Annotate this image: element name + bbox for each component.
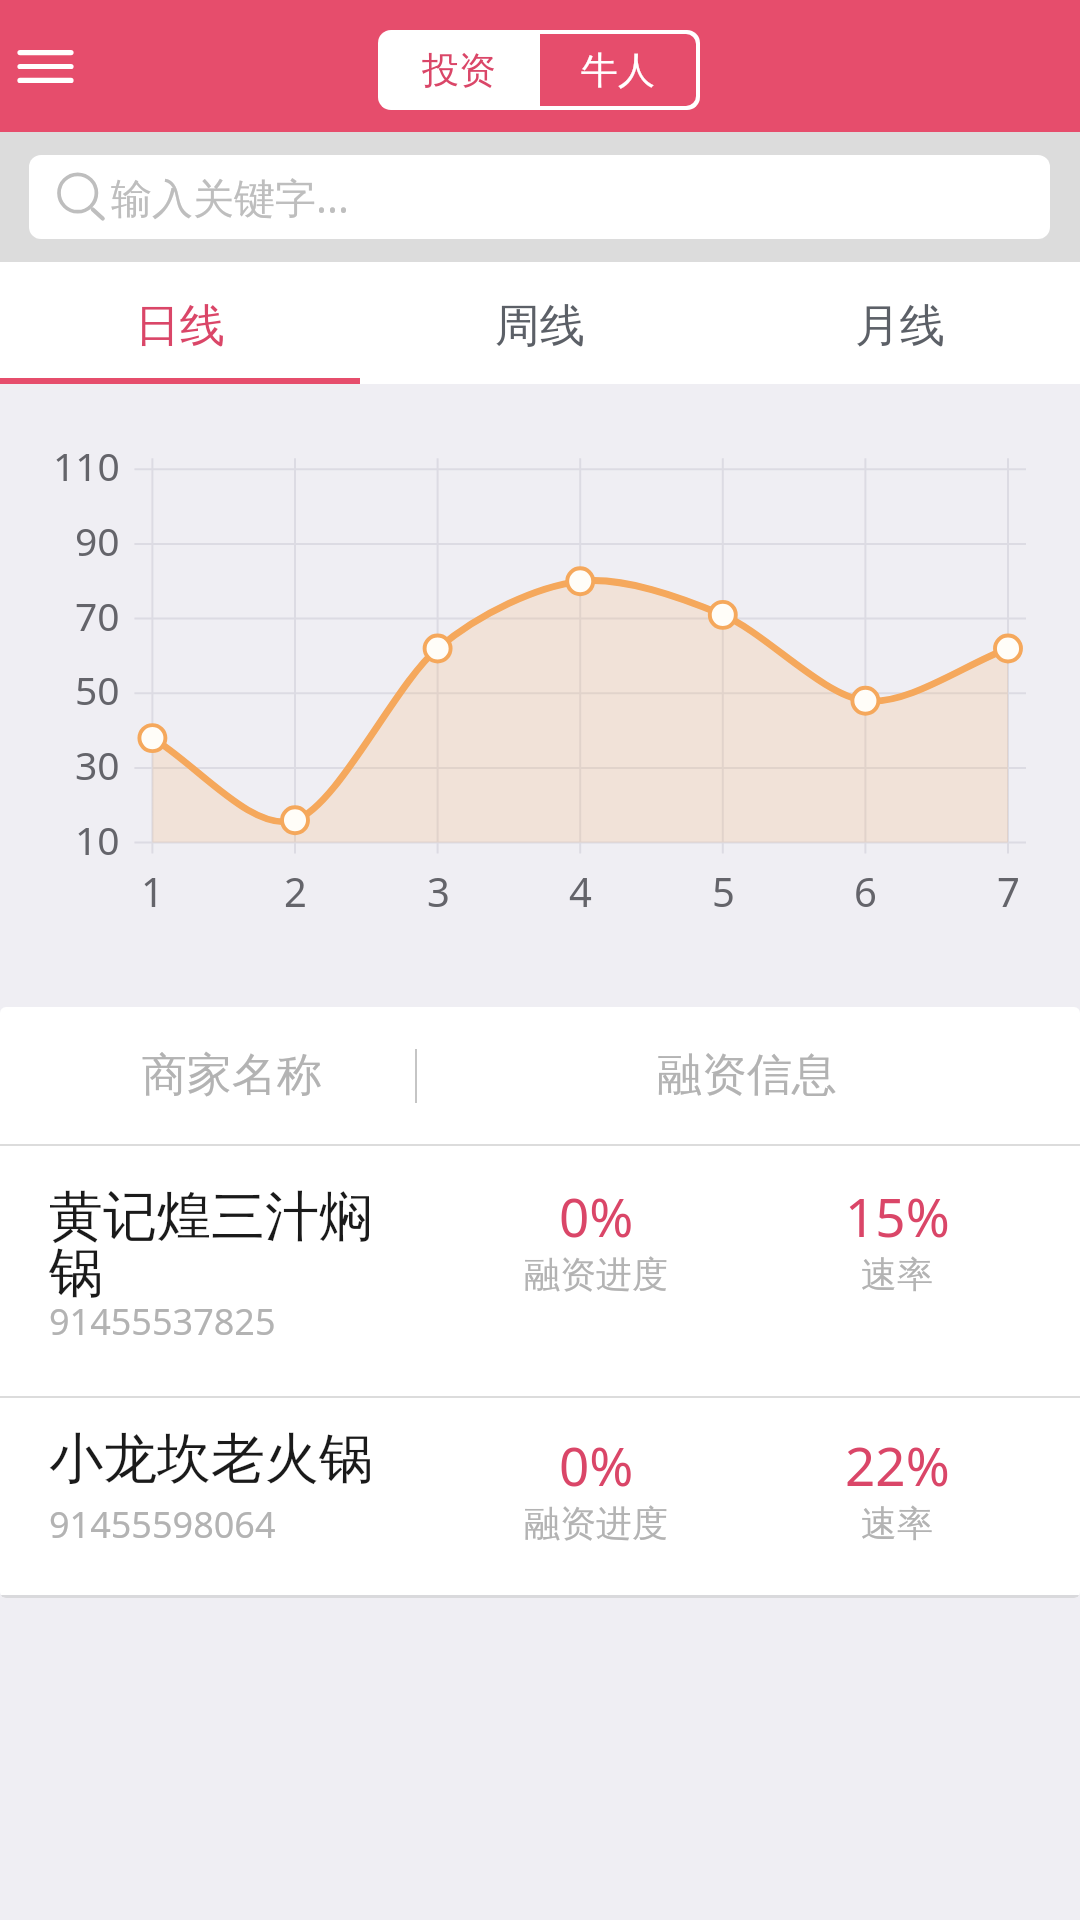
button[interactable]: Menu [0, 14, 90, 118]
staticText: 50 [75, 663, 120, 716]
staticText: 10 [75, 813, 120, 866]
button[interactable]: 投资 [378, 30, 540, 110]
staticText: 2 [284, 864, 307, 914]
staticText: 速率 [861, 1501, 933, 1546]
staticText: 7 [997, 864, 1020, 914]
staticText: 日线 [135, 298, 225, 355]
button[interactable]: 黄记煌三汁焖锅 [0, 1145, 1080, 1395]
staticText: 小龙坎老火锅 [49, 1425, 389, 1493]
staticText: 22% [845, 1429, 950, 1491]
staticText: 投资 [422, 47, 496, 94]
staticText: 70 [75, 589, 120, 642]
staticText: 5 [712, 864, 735, 914]
button[interactable]: 输入关键字... [29, 155, 1050, 239]
staticText: 0% [559, 1180, 634, 1242]
staticText: 速率 [861, 1252, 933, 1297]
staticText: 0% [559, 1429, 634, 1491]
staticText: 15% [845, 1180, 950, 1242]
staticText: 3 [427, 864, 450, 914]
button[interactable]: 月线 [720, 262, 1080, 384]
staticText: 6 [854, 864, 877, 914]
staticText: 1 [141, 864, 164, 914]
staticText: 4 [569, 864, 592, 914]
staticText: 黄记煌三汁焖锅 [49, 1183, 389, 1307]
button[interactable]: 商家名称 [0, 1007, 1080, 1144]
staticText: 30 [75, 738, 120, 791]
staticText: 牛人 [581, 47, 655, 94]
staticText: 月线 [855, 298, 945, 355]
staticText: 周线 [495, 298, 585, 355]
staticText: 融资进度 [524, 1501, 668, 1546]
button[interactable]: 牛人 [540, 34, 696, 106]
button[interactable]: 日线 [0, 262, 360, 384]
staticText: 融资信息 [657, 1047, 837, 1104]
button[interactable]: 小龙坎老火锅 [0, 1397, 1080, 1598]
staticText: 融资进度 [524, 1252, 668, 1297]
staticText: 91455598064 [49, 1500, 276, 1549]
staticText: 输入关键字... [111, 169, 349, 225]
staticText: 商家名称 [142, 1047, 322, 1104]
staticText: 91455537825 [49, 1297, 276, 1346]
staticText: 90 [75, 514, 120, 567]
staticText: 110 [53, 439, 120, 492]
button[interactable]: 周线 [360, 262, 720, 384]
